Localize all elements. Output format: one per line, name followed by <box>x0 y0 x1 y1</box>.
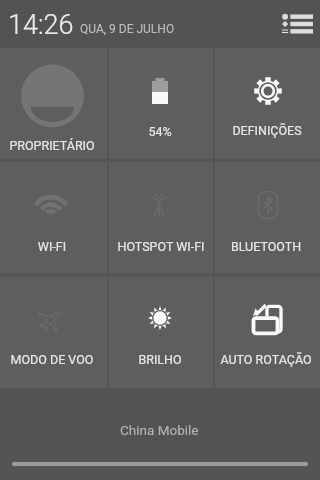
staticText: QUA, 9 DE JULHO <box>80 22 175 36</box>
button[interactable]: battery <box>108 48 212 160</box>
button[interactable]: brightness <box>108 274 212 389</box>
staticText: China Mobile <box>120 422 199 438</box>
button[interactable]: Quick settings <box>277 7 317 41</box>
staticText: BLUETOOTH <box>211 239 320 254</box>
staticText: MODO DE VOO <box>0 352 107 367</box>
button[interactable]: settings <box>214 48 320 160</box>
staticText: AUTO ROTAÇÃO <box>211 352 320 367</box>
button[interactable]: wifi <box>0 160 107 274</box>
staticText: PROPRIETÁRIO <box>0 138 107 153</box>
button[interactable]: airplane <box>0 274 107 389</box>
staticText: 14:26 <box>8 9 74 41</box>
staticText: 54% <box>105 124 215 139</box>
staticText: BRILHO <box>105 352 215 367</box>
button[interactable]: bluetooth <box>214 160 320 274</box>
button[interactable]: rotation <box>214 274 320 389</box>
staticText: DEFINIÇÕES <box>212 123 320 138</box>
staticText: WI-FI <box>0 239 107 254</box>
button[interactable]: hotspot <box>108 160 212 274</box>
staticText: HOTSPOT WI-FI <box>106 239 216 254</box>
button[interactable]: owner <box>0 48 107 160</box>
